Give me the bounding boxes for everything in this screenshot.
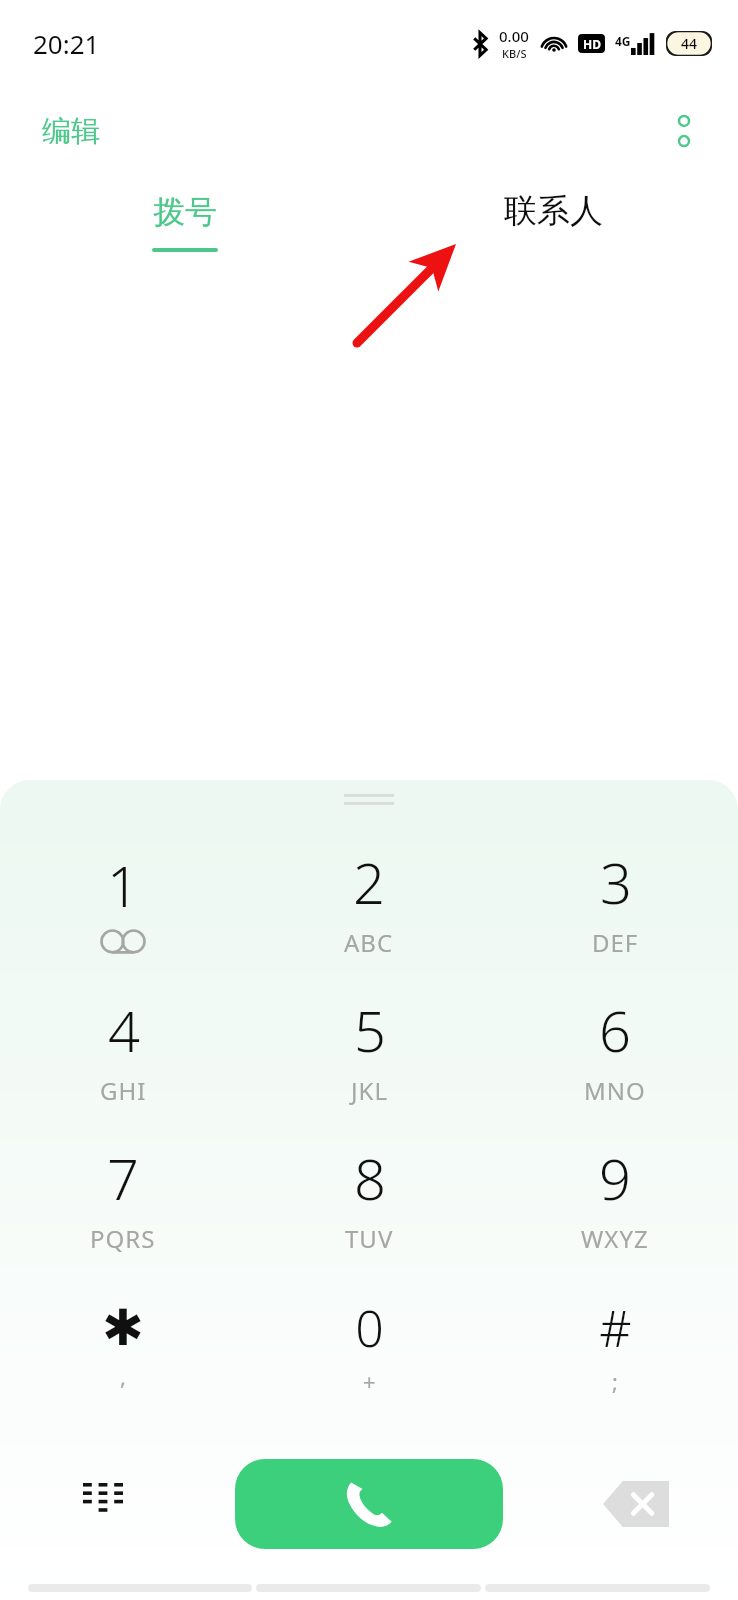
button[interactable]: Backspace (533, 1429, 738, 1579)
staticText: GHI (100, 1074, 147, 1107)
staticText: ABC (344, 926, 394, 959)
staticText: ✱ (102, 1299, 144, 1357)
button[interactable]: 9 (492, 1123, 738, 1271)
button[interactable]: 联系人 (369, 176, 738, 286)
staticText: WXYZ (581, 1222, 649, 1255)
staticText: 7 (107, 1140, 139, 1216)
staticText: ; (612, 1366, 619, 1396)
staticText: 0.00 (499, 26, 529, 46)
staticText: JKL (351, 1074, 388, 1107)
staticText: 0 (355, 1294, 384, 1362)
staticText: TUV (345, 1222, 394, 1255)
staticText: 拨号 (153, 192, 217, 232)
button[interactable]: 4 (0, 975, 246, 1123)
staticText: KB/S (502, 46, 527, 61)
staticText: 4G (615, 33, 631, 49)
button[interactable]: 3 (492, 827, 738, 975)
staticText: 5 (354, 992, 386, 1068)
staticText: # (599, 1294, 632, 1362)
staticText: DEF (592, 926, 639, 959)
button[interactable]: ✱ (0, 1271, 246, 1419)
staticText: 8 (354, 1140, 386, 1216)
staticText: 4 (108, 992, 140, 1068)
button[interactable]: 1 (0, 827, 246, 975)
button[interactable]: Hide keypad (0, 1429, 205, 1579)
staticText: + (363, 1366, 377, 1396)
staticText: 联系人 (504, 190, 603, 232)
staticText: 20:21 (33, 26, 100, 61)
staticText: 9 (599, 1140, 631, 1216)
button[interactable]: 5 (246, 975, 492, 1123)
staticText: 1 (107, 847, 139, 923)
staticText: 3 (600, 844, 632, 920)
button[interactable]: # (492, 1271, 738, 1419)
button[interactable]: 编辑 (24, 105, 118, 158)
button[interactable]: 2 (246, 827, 492, 975)
staticText: 6 (599, 992, 631, 1068)
staticText: 2 (353, 844, 385, 920)
button[interactable]: Call (235, 1459, 503, 1549)
button[interactable]: 0 (246, 1271, 492, 1419)
staticText: MNO (584, 1074, 646, 1107)
staticText: 编辑 (42, 113, 100, 150)
button[interactable]: 6 (492, 975, 738, 1123)
button[interactable]: More options (656, 103, 712, 159)
staticText: PQRS (90, 1222, 156, 1255)
staticText: HD (583, 36, 601, 52)
staticText: , (120, 1361, 127, 1391)
staticText: 44 (681, 34, 698, 53)
button[interactable]: 7 (0, 1123, 246, 1271)
button[interactable]: 8 (246, 1123, 492, 1271)
button[interactable]: 拨号 (0, 176, 369, 286)
